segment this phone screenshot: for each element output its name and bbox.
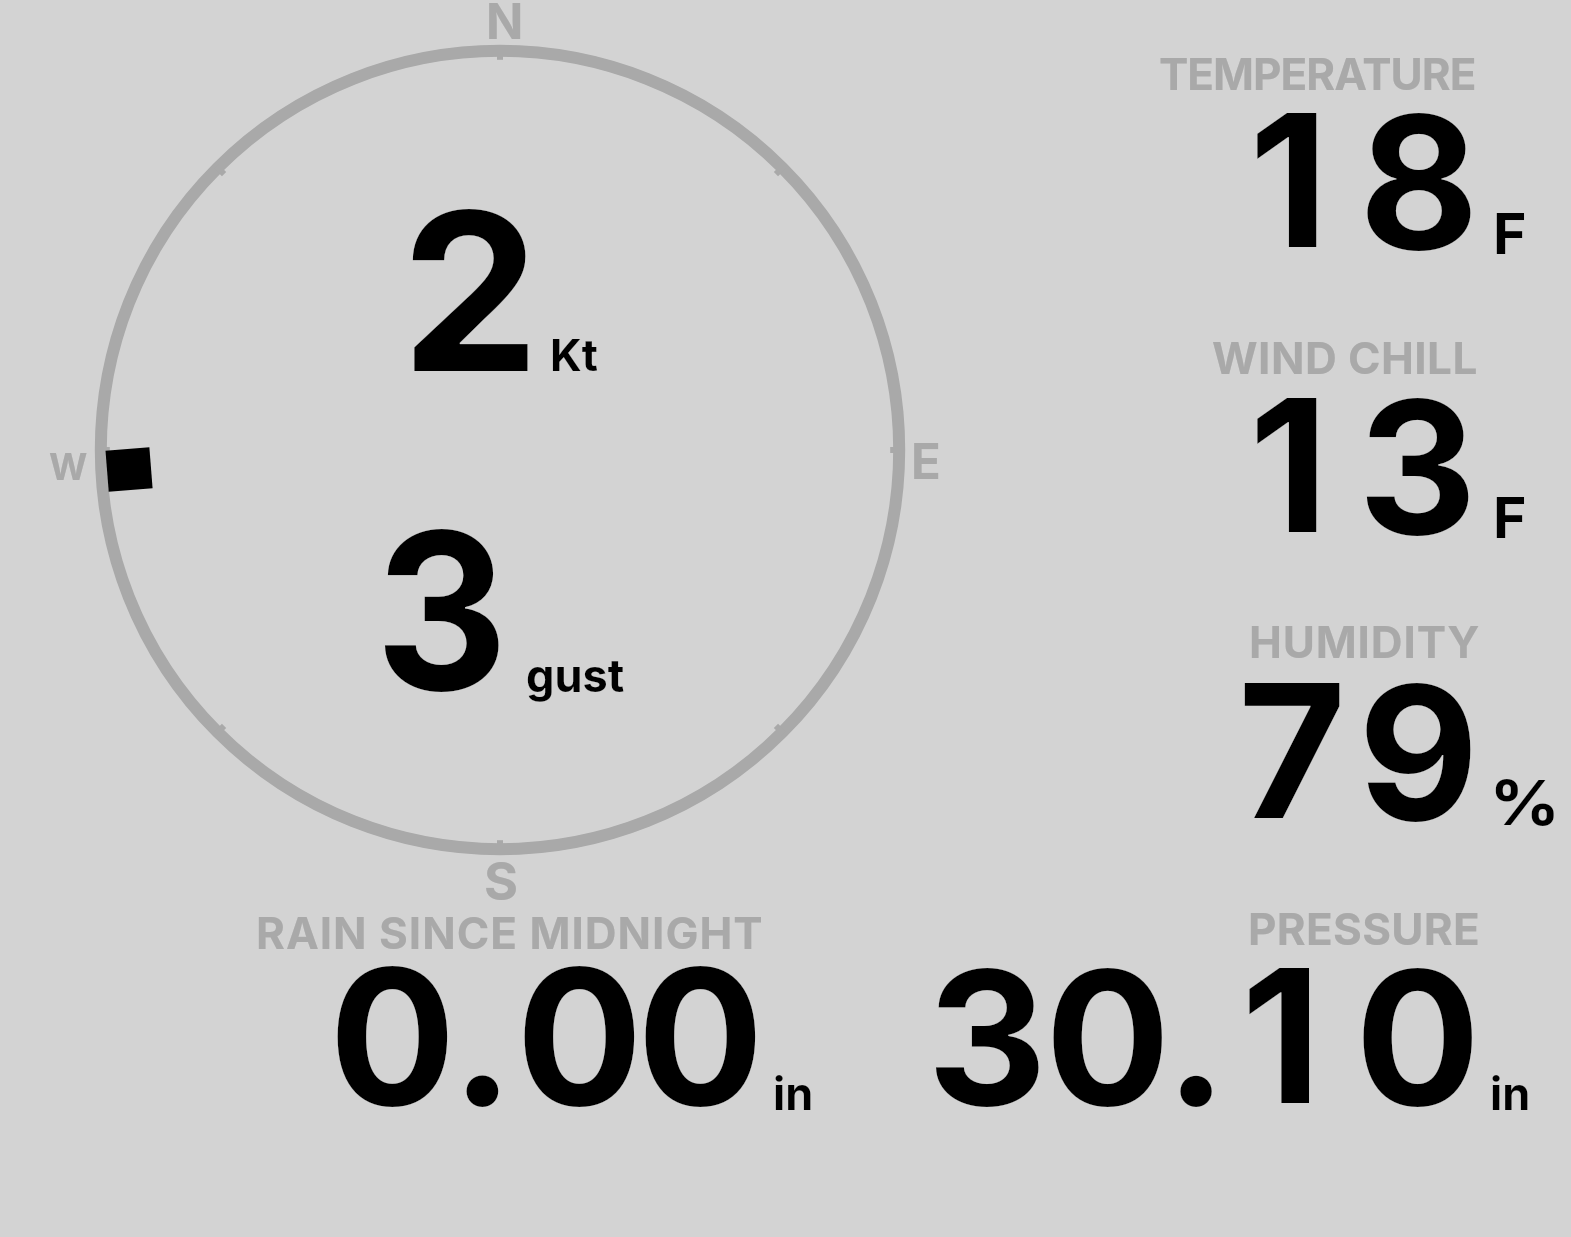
staticText: F <box>1493 199 1527 268</box>
staticText: 0 <box>516 923 643 1150</box>
staticText: 1 <box>1241 923 1322 1148</box>
staticText: WIND CHILL <box>1212 331 1478 384</box>
button[interactable]: Temperature 18 degrees Fahrenheit <box>1140 40 1560 270</box>
button[interactable]: Pressure 30.10 inches <box>900 895 1560 1125</box>
button[interactable]: Wind direction compass, 2 knots, gusting… <box>60 40 940 880</box>
staticText: . <box>1165 925 1228 1150</box>
staticText: in <box>773 1066 814 1120</box>
staticText: HUMIDITY <box>1249 615 1481 668</box>
staticText: % <box>1490 765 1560 840</box>
staticText: RAIN SINCE MIDNIGHT <box>256 906 764 959</box>
staticText: 0 <box>637 923 764 1150</box>
staticText: in <box>1490 1066 1531 1120</box>
staticText: 0 <box>329 923 456 1150</box>
staticText: N <box>486 0 524 51</box>
button[interactable]: Rain since midnight 0.00 inches <box>240 900 840 1125</box>
button[interactable]: Humidity 79 percent <box>1140 610 1560 840</box>
staticText: 2 <box>401 158 540 424</box>
staticText: 1 <box>1249 354 1329 577</box>
staticText: TEMPERATURE <box>1159 47 1476 100</box>
staticText: 1 <box>1249 69 1329 292</box>
button[interactable]: Wind chill 13 degrees Fahrenheit <box>1140 325 1560 555</box>
staticText: 7 <box>1238 638 1347 863</box>
staticText: W <box>49 444 88 489</box>
staticText: 9 <box>1358 640 1479 865</box>
staticText: 3 <box>375 478 509 743</box>
staticText: . <box>451 923 514 1150</box>
staticText: 0 <box>1045 925 1171 1150</box>
staticText: E <box>911 432 941 491</box>
staticText: S <box>484 850 519 913</box>
staticText: gust <box>526 648 625 702</box>
staticText: F <box>1493 483 1527 552</box>
staticText: Kt <box>550 328 598 381</box>
staticText: PRESSURE <box>1248 902 1480 955</box>
staticText: 8 <box>1359 71 1479 294</box>
staticText: 0 <box>1355 925 1481 1150</box>
staticText: 3 <box>927 925 1048 1150</box>
staticText: 3 <box>1358 356 1477 579</box>
